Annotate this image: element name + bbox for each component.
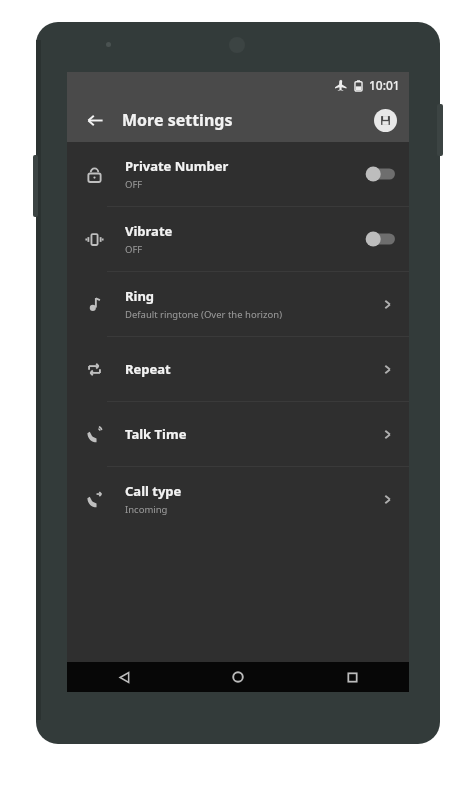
button[interactable]: Recents: [295, 662, 409, 692]
button[interactable]: Vibrate: [67, 207, 409, 271]
button[interactable]: Private Number toggle: [363, 165, 397, 183]
staticText: Talk Time: [125, 425, 187, 443]
button[interactable]: Ring: [67, 272, 409, 336]
staticText: Call type: [125, 482, 182, 500]
button[interactable]: Back: [67, 662, 181, 692]
button[interactable]: Private Number: [67, 142, 409, 206]
staticText: More settings: [122, 109, 233, 131]
button[interactable]: Vibrate toggle: [363, 230, 397, 248]
staticText: Repeat: [125, 360, 171, 378]
staticText: 10:01: [369, 77, 400, 93]
button[interactable]: Save: [374, 109, 397, 132]
staticText: OFF: [125, 243, 143, 256]
staticText: Incoming: [125, 503, 168, 516]
button[interactable]: Back: [81, 106, 109, 134]
button[interactable]: Home: [181, 662, 295, 692]
staticText: Private Number: [125, 157, 229, 175]
staticText: Default ringtone (Over the horizon): [125, 308, 282, 321]
button[interactable]: Call type: [67, 467, 409, 531]
button[interactable]: Repeat: [67, 337, 409, 401]
button[interactable]: Talk Time: [67, 402, 409, 466]
staticText: OFF: [125, 178, 143, 191]
staticText: Ring: [125, 287, 155, 305]
staticText: Vibrate: [125, 222, 173, 240]
